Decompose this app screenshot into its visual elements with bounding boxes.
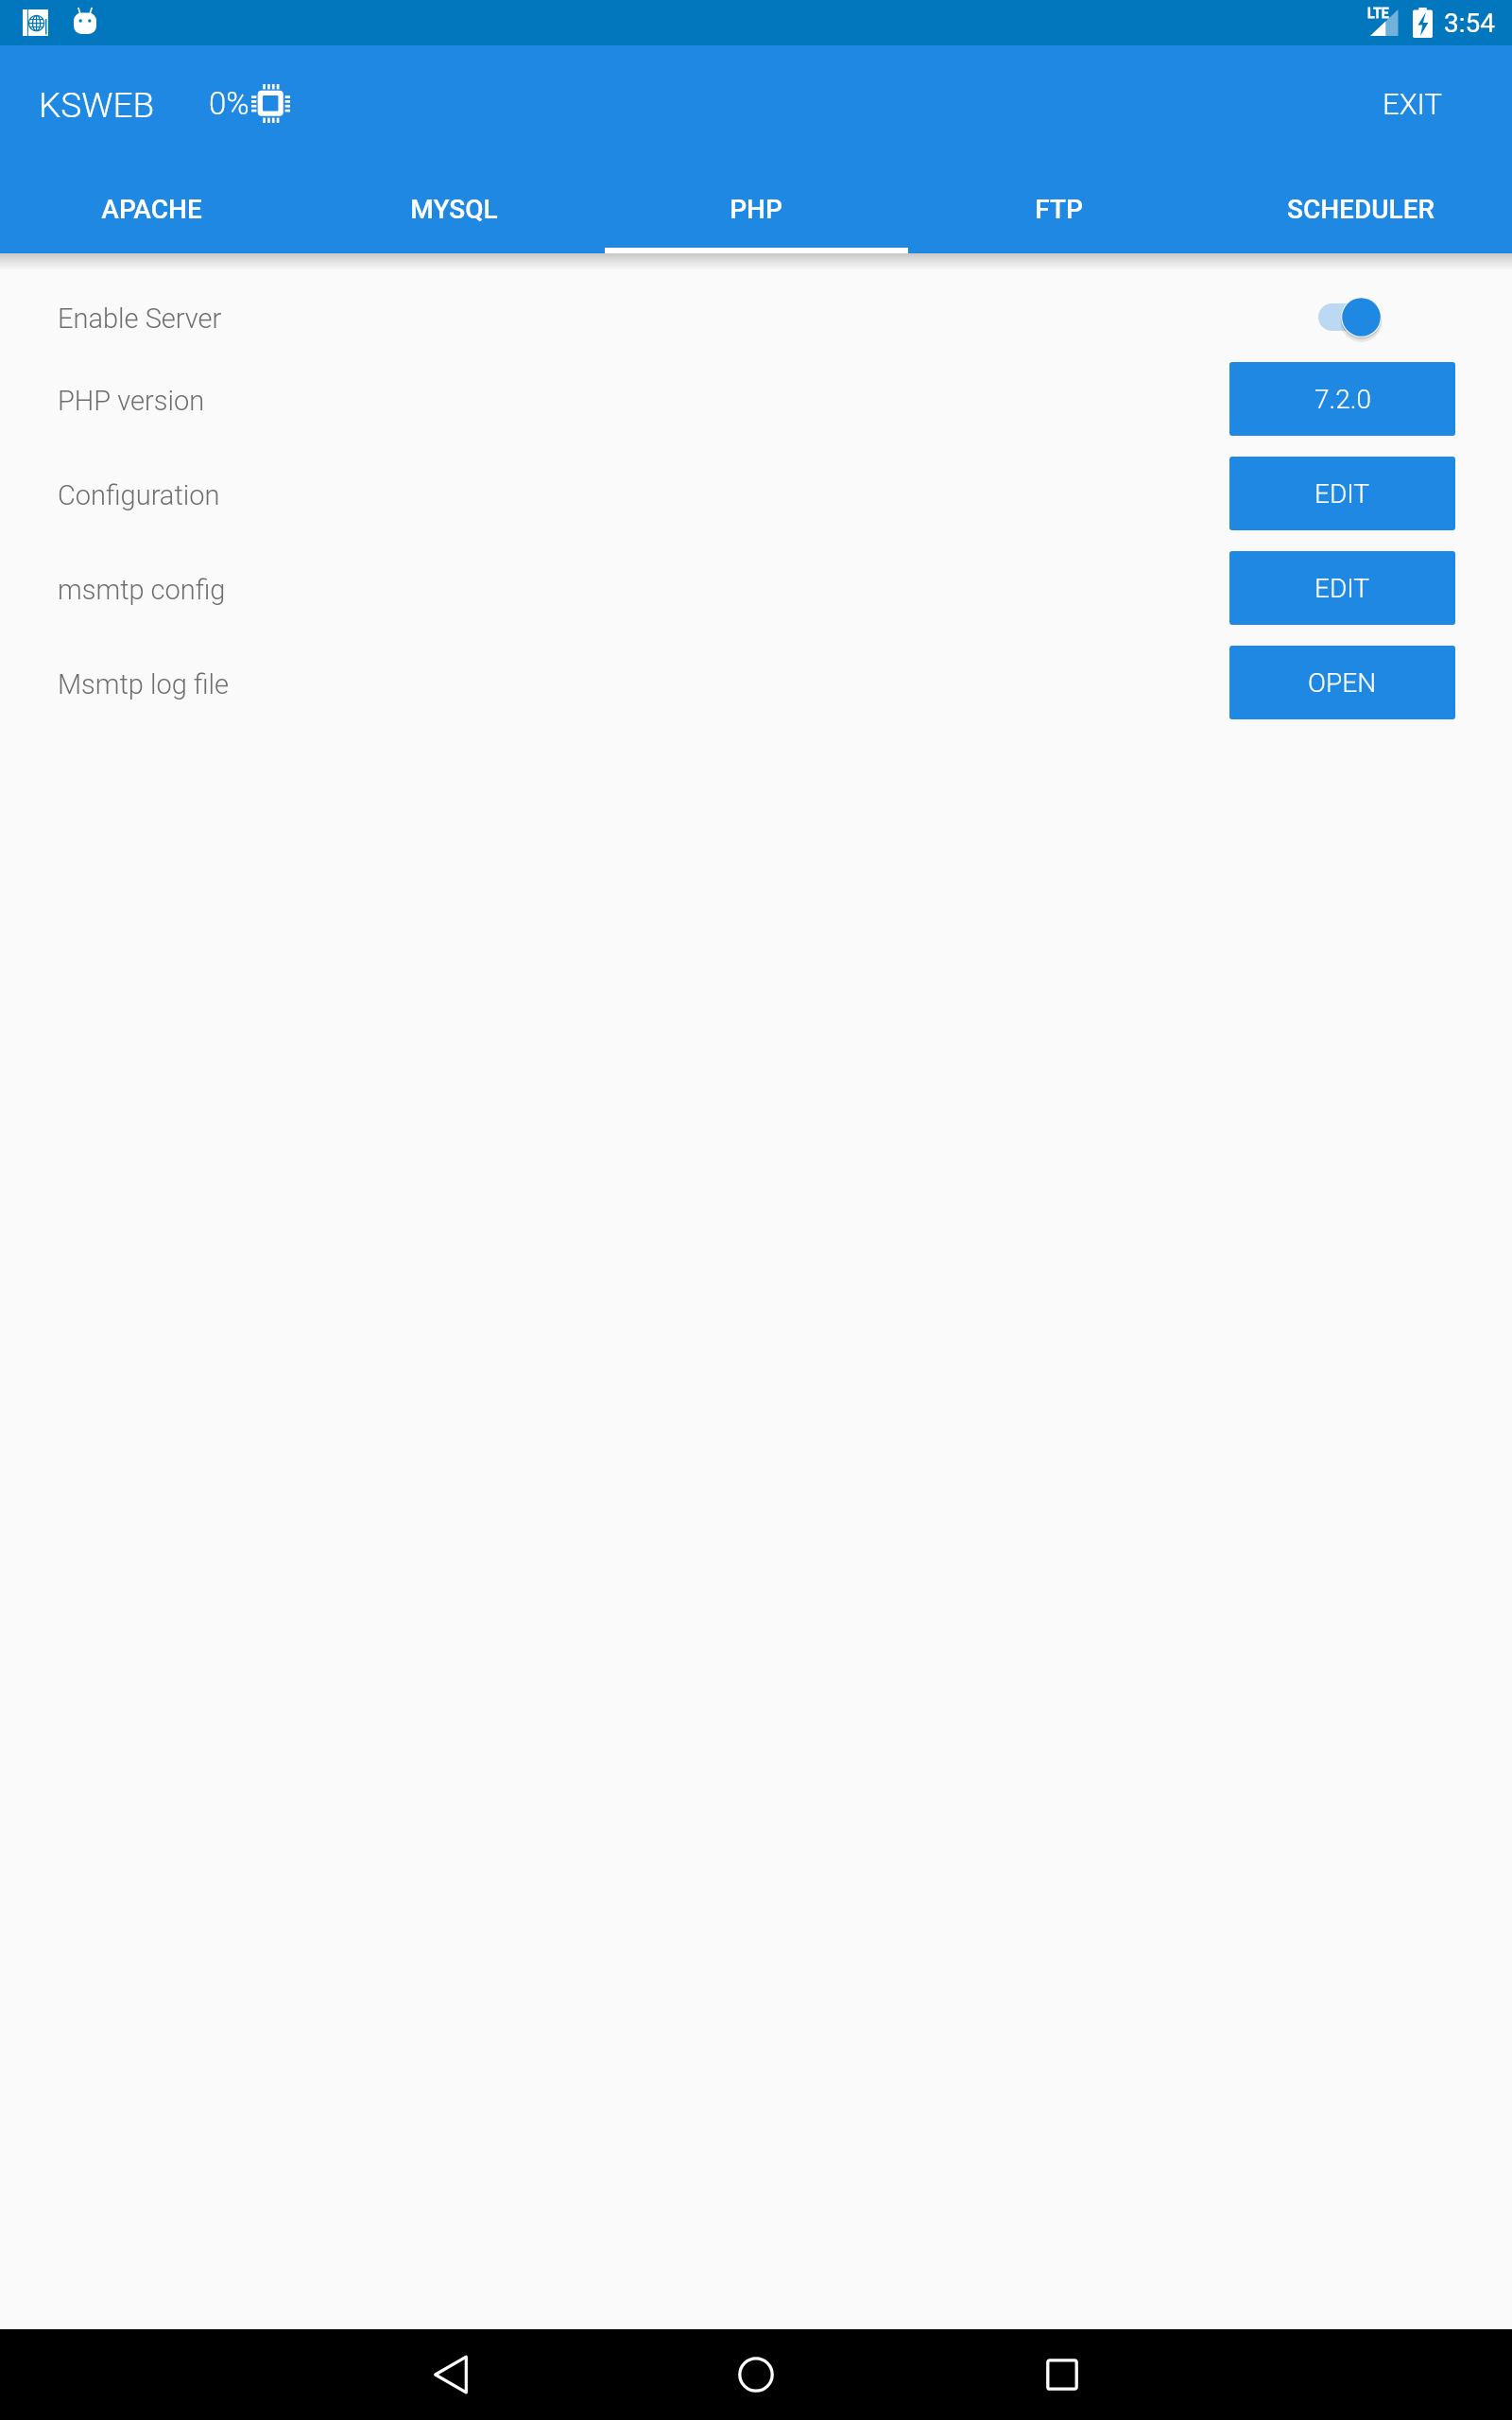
- button[interactable]: Recents: [1030, 2342, 1094, 2407]
- staticText: APACHE: [101, 194, 202, 225]
- staticText: 3:54: [1444, 8, 1495, 39]
- button[interactable]: Configuration: [0, 457, 1512, 530]
- staticText: LTE: [1367, 6, 1389, 21]
- button[interactable]: FTP: [907, 159, 1210, 253]
- staticText: PHP: [730, 194, 782, 225]
- button[interactable]: MYSQL: [302, 159, 605, 253]
- staticText: FTP: [1035, 194, 1083, 225]
- button[interactable]: OPEN: [1229, 646, 1455, 719]
- staticText: Msmtp log file: [58, 668, 230, 700]
- staticText: PHP version: [58, 385, 205, 417]
- button[interactable]: PHP: [605, 159, 907, 253]
- staticText: OPEN: [1308, 667, 1377, 699]
- staticText: 7.2.0: [1314, 384, 1371, 415]
- staticText: Configuration: [58, 479, 220, 511]
- staticText: EXIT: [1383, 87, 1442, 121]
- button[interactable]: Enable Server: [0, 280, 1512, 354]
- button[interactable]: 7.2.0: [1229, 362, 1455, 436]
- button[interactable]: Msmtp log file: [0, 646, 1512, 719]
- button[interactable]: Home: [724, 2342, 788, 2407]
- staticText: SCHEDULER: [1287, 194, 1435, 225]
- staticText: msmtp config: [58, 574, 226, 606]
- button[interactable]: Back: [419, 2342, 483, 2407]
- staticText: Enable Server: [58, 302, 222, 335]
- button[interactable]: SCHEDULER: [1210, 159, 1512, 253]
- staticText: 0%: [209, 85, 249, 122]
- button[interactable]: EDIT: [1229, 457, 1455, 530]
- staticText: MYSQL: [410, 194, 498, 225]
- staticText: KSWEB: [39, 85, 155, 126]
- button[interactable]: EXIT: [1341, 45, 1512, 147]
- button[interactable]: EDIT: [1229, 551, 1455, 625]
- button[interactable]: Enable Server toggle, on: [1318, 280, 1381, 354]
- staticText: EDIT: [1314, 478, 1370, 510]
- staticText: EDIT: [1314, 573, 1370, 604]
- button[interactable]: msmtp config: [0, 551, 1512, 625]
- button[interactable]: PHP version: [0, 362, 1512, 436]
- button[interactable]: APACHE: [0, 159, 302, 253]
